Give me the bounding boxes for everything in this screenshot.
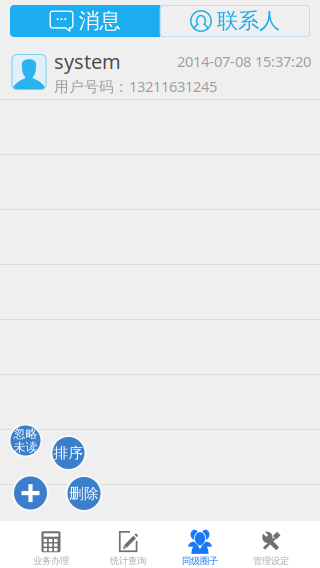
button[interactable]: 联系人	[160, 5, 310, 37]
button[interactable]: 消息	[10, 5, 160, 37]
button[interactable]: 统计查询	[92, 529, 164, 567]
staticText: 管理设定	[253, 555, 289, 567]
staticText: 同级圈子	[182, 555, 218, 567]
button[interactable]: system	[0, 45, 320, 100]
staticText: 用户号码：13211631245	[54, 76, 217, 96]
button[interactable]: 管理设定	[235, 529, 307, 567]
button[interactable]: 删除	[65, 475, 102, 512]
staticText: 忽略	[13, 426, 37, 441]
button[interactable]: 同级圈子	[164, 529, 236, 567]
staticText: 删除	[69, 484, 99, 502]
staticText: 业务办理	[33, 555, 69, 567]
staticText: 消息	[78, 8, 120, 34]
button[interactable]: 排序	[50, 435, 86, 471]
staticText: 排序	[53, 444, 83, 462]
button[interactable]: 忽略	[8, 423, 42, 457]
staticText: 联系人	[217, 8, 280, 34]
staticText: system	[54, 48, 121, 75]
staticText: 2014-07-08 15:37:20	[177, 51, 311, 71]
staticText: 统计查询	[110, 555, 146, 567]
button[interactable]: 新建	[12, 474, 49, 511]
button[interactable]: 业务办理	[15, 529, 87, 567]
staticText: 未读	[13, 440, 37, 455]
